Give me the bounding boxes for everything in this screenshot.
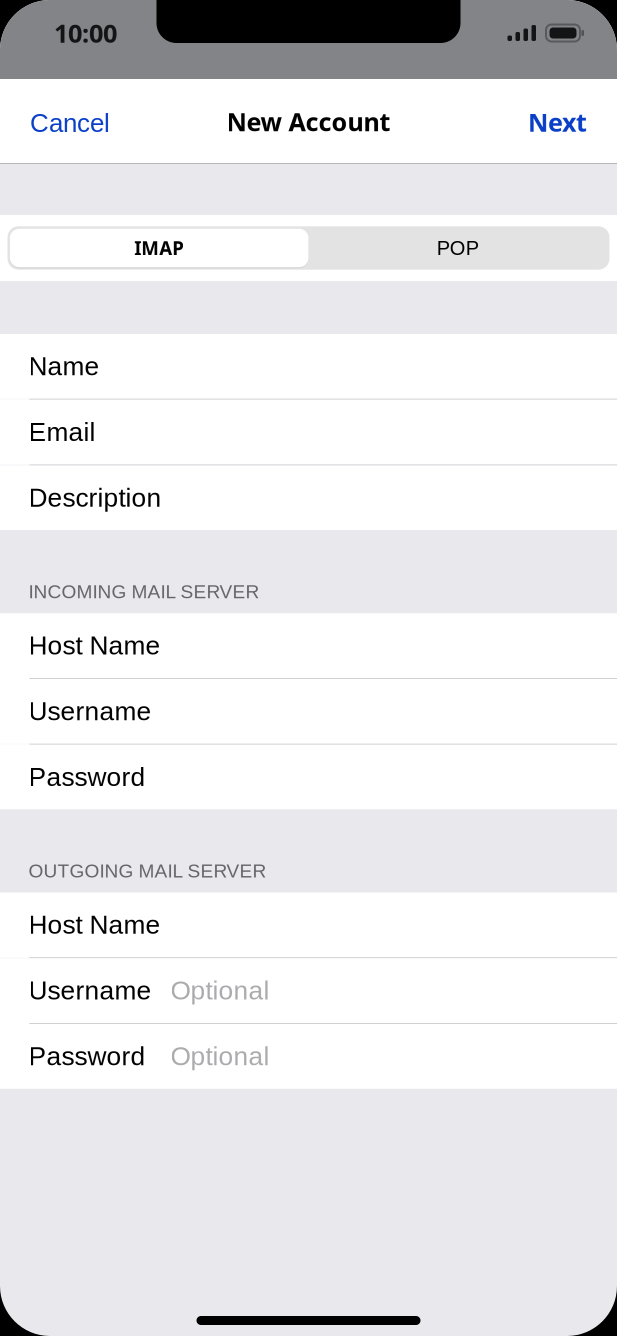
staticText: Username bbox=[28, 976, 151, 1005]
button[interactable]: Password bbox=[0, 745, 617, 810]
staticText: 10:00 bbox=[54, 16, 117, 50]
staticText: POP bbox=[437, 237, 479, 259]
button[interactable]: Password bbox=[0, 1024, 617, 1089]
staticText: Password bbox=[28, 762, 145, 791]
staticText: Host Name bbox=[28, 631, 160, 660]
button[interactable]: Email bbox=[0, 400, 617, 465]
staticText: INCOMING MAIL SERVER bbox=[28, 581, 259, 602]
staticText: Next bbox=[528, 105, 587, 139]
staticText: Cancel bbox=[30, 109, 110, 137]
button[interactable]: Host Name bbox=[0, 613, 617, 678]
staticText: Host Name bbox=[28, 910, 160, 939]
staticText: Description bbox=[28, 483, 161, 512]
button[interactable]: IMAP bbox=[10, 228, 308, 268]
button[interactable]: POP bbox=[308, 228, 607, 268]
staticText: OUTGOING MAIL SERVER bbox=[28, 860, 266, 881]
button[interactable]: Next bbox=[519, 94, 596, 148]
button[interactable]: Description bbox=[0, 465, 617, 530]
staticText: Email bbox=[28, 417, 95, 446]
staticText: IMAP bbox=[134, 235, 184, 261]
button[interactable]: Cancel bbox=[21, 96, 119, 146]
button[interactable]: Host Name bbox=[0, 892, 617, 957]
staticText: Password bbox=[28, 1041, 145, 1071]
staticText: Name bbox=[28, 351, 99, 381]
staticText: Optional bbox=[170, 1041, 269, 1071]
button[interactable]: Name bbox=[0, 334, 617, 399]
button[interactable]: Username bbox=[0, 679, 617, 744]
staticText: Username bbox=[28, 696, 151, 726]
button[interactable]: Username bbox=[0, 958, 617, 1023]
staticText: Optional bbox=[170, 976, 269, 1005]
staticText: New Account bbox=[226, 104, 390, 138]
